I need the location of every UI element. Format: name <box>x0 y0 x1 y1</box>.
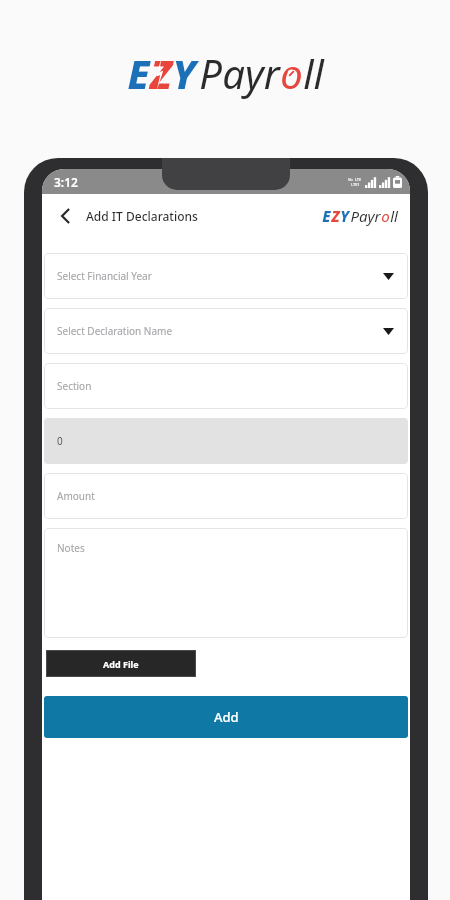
staticText: LTE1 <box>351 182 360 187</box>
button[interactable]: 0 <box>44 418 408 464</box>
staticText: Add File <box>103 658 139 670</box>
staticText: ayr <box>222 46 280 100</box>
staticText: o <box>280 46 303 100</box>
staticText: E <box>322 206 331 226</box>
staticText: Section <box>57 379 92 393</box>
staticText: Vo LTE <box>348 177 362 182</box>
staticText: 3:12 <box>54 174 78 190</box>
staticText: P <box>199 46 222 100</box>
button[interactable]: Add <box>44 696 408 738</box>
staticText: Select Financial Year <box>57 269 152 283</box>
button[interactable]: Back <box>50 200 82 232</box>
staticText: Notes <box>57 541 85 555</box>
staticText: Y <box>172 46 196 100</box>
staticText: Y <box>340 206 349 226</box>
button[interactable]: Amount <box>44 473 408 519</box>
staticText: Add IT Declarations <box>86 208 198 224</box>
staticText: Select Declaration Name <box>57 324 173 338</box>
staticText: ll <box>303 46 324 100</box>
staticText: Z <box>150 46 172 100</box>
button[interactable]: Select Declaration Name <box>44 308 408 354</box>
button[interactable]: Section <box>44 363 408 409</box>
button[interactable]: Select Financial Year <box>44 253 408 299</box>
staticText: ll <box>390 206 398 226</box>
staticText: Amount <box>57 489 95 503</box>
staticText: Payr <box>350 206 381 226</box>
staticText: Z <box>331 206 340 226</box>
button[interactable]: Add File <box>46 650 196 677</box>
staticText: o <box>381 206 390 226</box>
staticText: Add <box>214 708 239 726</box>
button[interactable]: Notes <box>44 528 408 638</box>
staticText: E <box>127 46 150 100</box>
staticText: 0 <box>57 434 63 448</box>
